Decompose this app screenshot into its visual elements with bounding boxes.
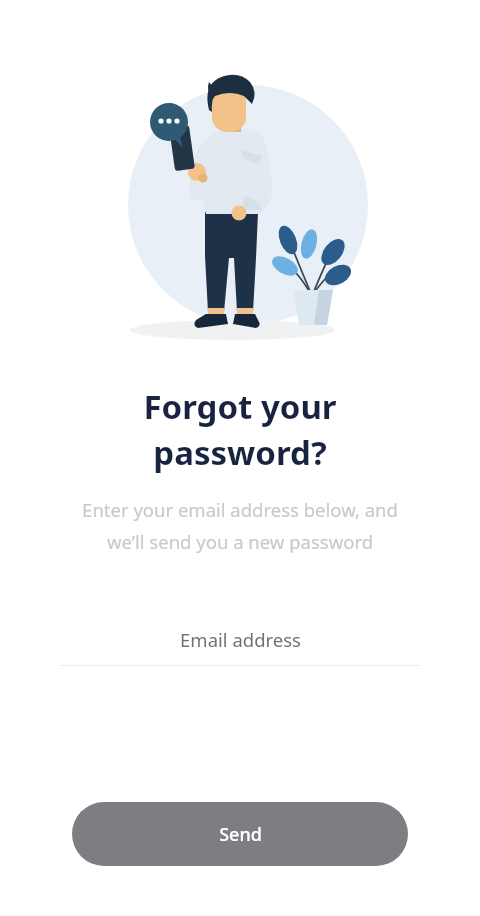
staticText: Send: [219, 822, 262, 847]
staticText: Enter your email address below, and we’l…: [28, 497, 452, 555]
staticText: Email address: [180, 627, 301, 652]
button[interactable]: Send password reset email: [72, 802, 408, 866]
staticText: Forgot your password?: [24, 384, 456, 475]
button[interactable]: Email address: [60, 627, 420, 666]
